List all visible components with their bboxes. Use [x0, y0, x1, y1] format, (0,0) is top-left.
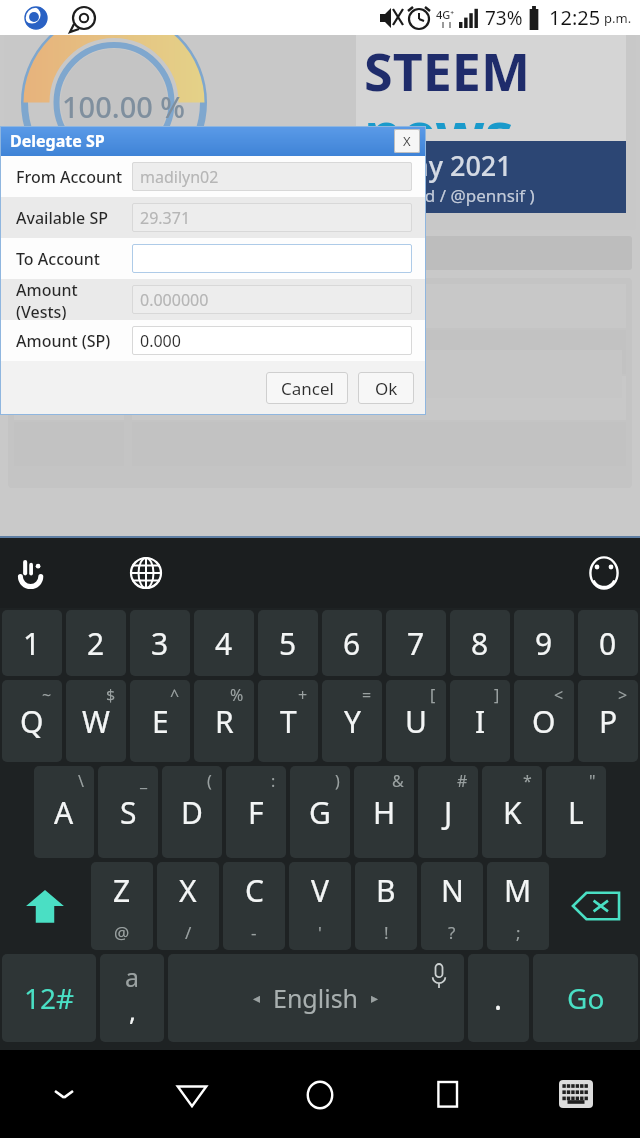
staticText: @: [114, 921, 130, 944]
button[interactable]: Emoji: [580, 549, 628, 597]
staticText: *: [523, 770, 532, 792]
button[interactable]: (: [162, 766, 222, 858]
staticText: ": [589, 770, 596, 792]
staticText: 2 May 2021: [366, 147, 512, 184]
staticText: 2: [87, 623, 105, 664]
button[interactable]: +: [258, 680, 318, 762]
staticText: #health: [140, 311, 209, 337]
staticText: #: [457, 770, 468, 792]
button[interactable]: 0.000000: [132, 285, 412, 314]
staticText: (: [207, 770, 212, 792]
button[interactable]: #: [418, 766, 478, 858]
button[interactable]: X: [157, 862, 219, 950]
staticText: 7: [407, 623, 425, 664]
button[interactable]: 1: [2, 610, 62, 676]
staticText: 12#: [24, 979, 75, 1017]
button[interactable]: a: [100, 954, 164, 1042]
button[interactable]: $: [66, 680, 126, 762]
button[interactable]: &: [354, 766, 414, 858]
button[interactable]: Handwriting: [10, 549, 58, 597]
staticText: ,: [129, 993, 136, 1028]
staticText: romoted / @pennsif ): [366, 184, 535, 207]
staticText: /: [185, 921, 192, 944]
button[interactable]: ~: [2, 680, 62, 762]
staticText: $ 0.00: [90, 350, 128, 398]
staticText: $: [106, 684, 116, 706]
staticText: R: [215, 701, 234, 742]
button[interactable]: Close: [394, 129, 420, 153]
staticText: Available SP: [16, 207, 109, 229]
button[interactable]: B: [355, 862, 417, 950]
button[interactable]: \: [34, 766, 94, 858]
button[interactable]: Go: [533, 954, 638, 1042]
button[interactable]: 7: [386, 610, 446, 676]
staticText: 8: [471, 623, 489, 664]
staticText: !: [384, 921, 389, 944]
button[interactable]: 4: [194, 610, 254, 676]
button[interactable]: 12#: [2, 954, 96, 1042]
button[interactable]: Back: [128, 1050, 256, 1138]
button[interactable]: _: [98, 766, 158, 858]
button[interactable]: Cancel: [266, 372, 348, 404]
button[interactable]: 3: [130, 610, 190, 676]
staticText: Amount (Vests): [16, 279, 132, 320]
staticText: 100.00 %: [62, 87, 186, 126]
button[interactable]: [: [386, 680, 446, 762]
button[interactable]: Z: [91, 862, 153, 950]
button[interactable]: V: [289, 862, 351, 950]
staticText: ;: [516, 921, 521, 944]
button[interactable]: 2: [66, 610, 126, 676]
button[interactable]: ): [290, 766, 350, 858]
button[interactable]: 6: [322, 610, 382, 676]
button[interactable]: Hide keyboard: [0, 1050, 128, 1138]
button[interactable]: =: [322, 680, 382, 762]
staticText: Tutorials: [346, 240, 424, 266]
staticText: From Account: [16, 166, 123, 188]
staticText: -: [251, 921, 257, 944]
button[interactable]: C: [223, 862, 285, 950]
button[interactable]: 29.371: [132, 203, 412, 232]
button[interactable]: ^: [130, 680, 190, 762]
button[interactable]: .: [468, 954, 529, 1042]
button[interactable]: 9: [514, 610, 574, 676]
staticText: H: [373, 792, 396, 833]
staticText: madilyn02: [140, 166, 219, 188]
button[interactable]: >: [578, 680, 638, 762]
button[interactable]: Backspace: [551, 860, 640, 952]
staticText: 5: [279, 623, 297, 664]
button[interactable]: 8: [450, 610, 510, 676]
staticText: &: [392, 770, 404, 792]
staticText: To Account: [16, 248, 100, 270]
button[interactable]: Shift: [0, 860, 89, 952]
staticText: 4G⁺: [436, 7, 455, 22]
button[interactable]: 0: [578, 610, 638, 676]
staticText: >: [618, 684, 628, 706]
button[interactable]: %: [194, 680, 254, 762]
button[interactable]: Ok: [358, 372, 414, 404]
staticText: news: [364, 92, 514, 129]
button[interactable]: <: [514, 680, 574, 762]
staticText: ': [318, 921, 322, 944]
button[interactable]: M: [487, 862, 549, 950]
button[interactable]: *: [482, 766, 542, 858]
button[interactable]: Home: [256, 1050, 384, 1138]
staticText: 29.371: [140, 207, 191, 229]
staticText: 6: [343, 623, 361, 664]
button[interactable]: 5: [258, 610, 318, 676]
button[interactable]: madilyn02: [132, 162, 412, 191]
button[interactable]: ]: [450, 680, 510, 762]
button[interactable]: 0.000: [132, 326, 412, 355]
button[interactable]: Change language: [122, 549, 170, 597]
button[interactable]: N: [421, 862, 483, 950]
button[interactable]: Recent apps: [384, 1050, 512, 1138]
staticText: :: [271, 770, 276, 792]
staticText: I: [475, 701, 486, 742]
button[interactable]: :: [226, 766, 286, 858]
button[interactable]: [132, 244, 412, 273]
button[interactable]: ◂: [168, 954, 464, 1042]
button[interactable]: ": [546, 766, 606, 858]
button[interactable]: Switch keyboard: [512, 1050, 640, 1138]
staticText: ~: [42, 684, 52, 706]
staticText: English: [273, 981, 359, 1015]
